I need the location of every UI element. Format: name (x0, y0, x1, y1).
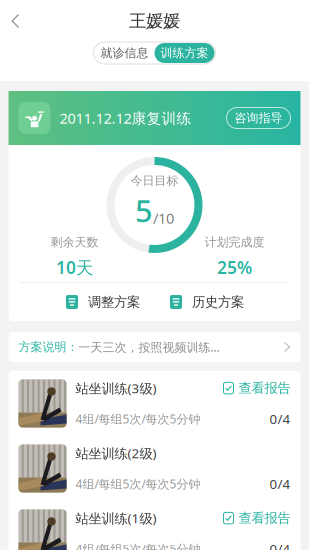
button[interactable]: 训练方案 (154, 43, 214, 63)
button[interactable]: 站坐训练(2级) (8, 436, 300, 501)
staticText: /10 (153, 208, 174, 228)
staticText: 王媛媛 (129, 10, 180, 32)
staticText: 方案说明： (18, 340, 78, 354)
staticText: 10天 (56, 256, 93, 279)
staticText: 0/4 (269, 540, 290, 550)
staticText: 一天三次，按照视频训练... (78, 339, 219, 355)
staticText: 站坐训练(3级) (75, 379, 156, 397)
staticText: 25% (217, 256, 252, 279)
button[interactable]: Back (0, 3, 31, 38)
staticText: 查看报告 (238, 510, 290, 526)
button[interactable]: 就诊信息 (94, 43, 154, 63)
staticText: 4组/每组5次/每次5分钟 (75, 541, 200, 550)
staticText: 今日目标 (130, 173, 178, 188)
button[interactable]: 调整方案 (54, 283, 150, 321)
button[interactable]: 方案说明： (8, 332, 300, 362)
staticText: 调整方案 (88, 294, 140, 310)
staticText: 站坐训练(1级) (75, 509, 156, 527)
staticText: 剩余天数 (50, 235, 98, 250)
button[interactable]: 咨询指导 (226, 107, 290, 128)
staticText: 计划完成度 (204, 235, 264, 250)
button[interactable]: 站坐训练(3级) (8, 371, 300, 436)
staticText: 咨询指导 (234, 111, 282, 125)
staticText: 0/4 (269, 475, 290, 493)
staticText: 就诊信息 (100, 46, 148, 60)
staticText: 查看报告 (238, 380, 290, 396)
staticText: 站坐训练(2级) (75, 444, 156, 462)
staticText: 4组/每组5次/每次5分钟 (75, 411, 200, 427)
staticText: 2011.12.12康复训练 (59, 108, 191, 128)
staticText: 0/4 (269, 410, 290, 428)
staticText: 5 (135, 190, 153, 231)
staticText: 历史方案 (192, 294, 244, 310)
staticText: 训练方案 (160, 46, 208, 60)
button[interactable]: 站坐训练(1级) (8, 501, 300, 550)
staticText: 4组/每组5次/每次5分钟 (75, 476, 200, 492)
button[interactable]: 历史方案 (158, 283, 254, 321)
